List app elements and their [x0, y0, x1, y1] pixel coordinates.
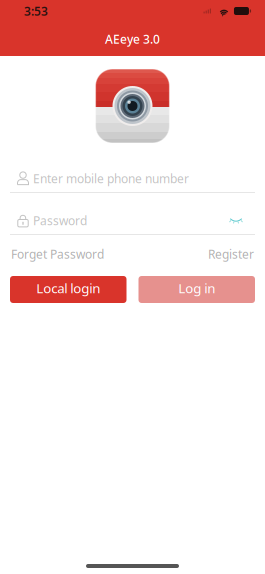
button[interactable]: Register	[208, 244, 254, 264]
staticText: Local login	[36, 279, 100, 297]
staticText: Register	[208, 246, 254, 262]
staticText: Log in	[178, 279, 215, 297]
button[interactable]: Forget Password	[11, 244, 104, 264]
staticText: AEeye 3.0	[105, 31, 160, 47]
button[interactable]: Log in	[138, 276, 255, 303]
staticText: 3:53	[24, 3, 48, 19]
staticText: Forget Password	[11, 246, 104, 262]
staticText: Enter mobile phone number	[33, 170, 189, 186]
staticText: Password	[33, 212, 87, 228]
button[interactable]: Local login	[10, 276, 126, 303]
button[interactable]: Show password	[225, 210, 247, 230]
